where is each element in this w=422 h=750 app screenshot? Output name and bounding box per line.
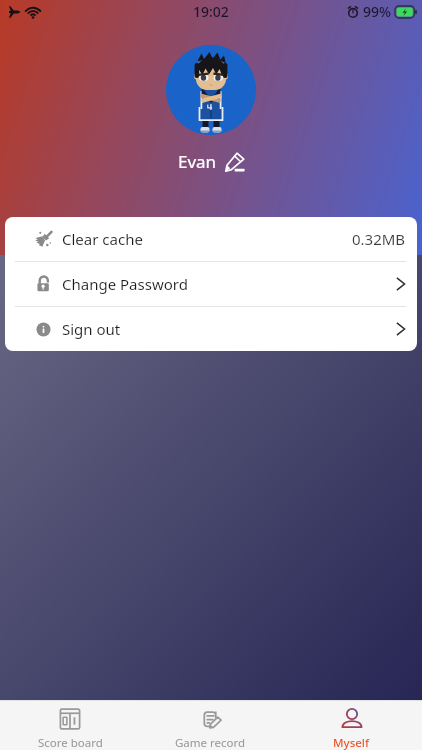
button[interactable]: Edit name <box>225 152 245 172</box>
staticText: Evan <box>178 150 217 173</box>
button[interactable]: Change Password <box>5 262 417 306</box>
staticText: Sign out <box>62 319 121 339</box>
staticText: Myself <box>333 735 370 750</box>
staticText: 99% <box>363 2 391 21</box>
staticText: 0.32MB <box>352 229 406 249</box>
button[interactable]: Myself <box>281 700 422 750</box>
staticText: Game record <box>175 735 246 750</box>
button[interactable]: Avatar <box>166 45 256 135</box>
button[interactable]: Score board <box>0 700 140 750</box>
staticText: Change Password <box>62 274 188 294</box>
staticText: 19:02 <box>193 2 229 21</box>
button[interactable]: Game record <box>140 700 281 750</box>
button[interactable]: Sign out <box>5 307 417 351</box>
button[interactable]: Clear cache <box>5 217 417 261</box>
staticText: Clear cache <box>62 229 143 249</box>
staticText: Score board <box>38 735 103 750</box>
